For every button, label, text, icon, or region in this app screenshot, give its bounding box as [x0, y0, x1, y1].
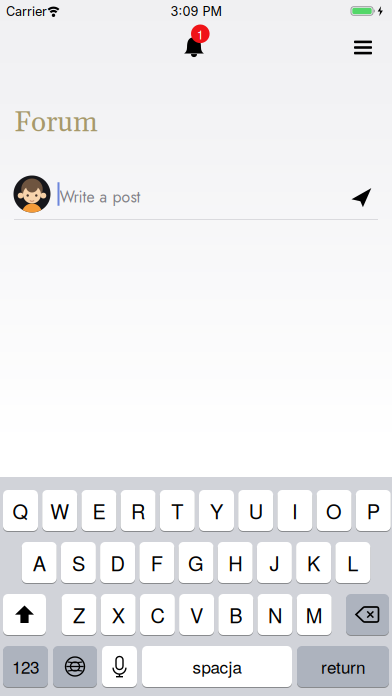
staticText: H: [228, 548, 242, 577]
staticText: G: [188, 548, 204, 577]
button[interactable]: H: [0, 0, 392, 696]
staticText: O: [326, 496, 342, 525]
button[interactable]: Shift: [0, 0, 392, 696]
staticText: L: [347, 548, 358, 577]
staticText: Z: [73, 600, 85, 629]
button[interactable]: Next keyboard: [0, 0, 392, 696]
staticText: W: [50, 496, 69, 525]
button[interactable]: E: [0, 0, 392, 696]
button[interactable]: Numbers: [0, 0, 392, 696]
button[interactable]: Z: [0, 0, 392, 696]
button[interactable]: Y: [0, 0, 392, 696]
button[interactable]: Menu: [354, 40, 372, 54]
button[interactable]: Notifications: [174, 24, 214, 64]
staticText: Y: [210, 496, 223, 525]
staticText: S: [72, 548, 85, 577]
button[interactable]: return: [0, 0, 392, 696]
staticText: Carrier: [6, 4, 47, 19]
button[interactable]: C: [0, 0, 392, 696]
staticText: Q: [12, 496, 28, 525]
staticText: X: [112, 600, 125, 629]
staticText: C: [150, 600, 164, 629]
button[interactable]: V: [0, 0, 392, 696]
staticText: spacja: [192, 654, 241, 679]
button[interactable]: T: [0, 0, 392, 696]
staticText: P: [367, 496, 380, 525]
button[interactable]: Send post: [351, 188, 371, 207]
staticText: V: [190, 600, 203, 629]
button[interactable]: L: [0, 0, 392, 696]
staticText: 123: [12, 654, 39, 679]
button[interactable]: Write a post: [13, 174, 343, 214]
button[interactable]: W: [0, 0, 392, 696]
staticText: return: [321, 654, 365, 679]
staticText: B: [229, 600, 242, 629]
button[interactable]: K: [0, 0, 392, 696]
button[interactable]: P: [0, 0, 392, 696]
staticText: U: [249, 496, 263, 525]
staticText: K: [307, 548, 320, 577]
staticText: 3:09 PM: [170, 4, 221, 19]
button[interactable]: N: [0, 0, 392, 696]
button[interactable]: Dictate: [0, 0, 392, 696]
staticText: F: [151, 548, 163, 577]
button[interactable]: F: [0, 0, 392, 696]
staticText: Write a post: [59, 186, 140, 208]
staticText: Forum: [14, 105, 98, 141]
staticText: 1: [197, 25, 204, 43]
button[interactable]: I: [0, 0, 392, 696]
button[interactable]: Q: [0, 0, 392, 696]
button[interactable]: spacja: [0, 0, 392, 696]
button[interactable]: M: [0, 0, 392, 696]
button[interactable]: U: [0, 0, 392, 696]
button[interactable]: Delete: [0, 0, 392, 696]
staticText: N: [268, 600, 282, 629]
staticText: T: [171, 496, 183, 525]
button[interactable]: X: [0, 0, 392, 696]
staticText: J: [269, 548, 279, 577]
staticText: M: [306, 600, 323, 629]
button[interactable]: A: [0, 0, 392, 696]
button[interactable]: J: [0, 0, 392, 696]
button[interactable]: G: [0, 0, 392, 696]
button[interactable]: S: [0, 0, 392, 696]
button[interactable]: R: [0, 0, 392, 696]
button[interactable]: B: [0, 0, 392, 696]
button[interactable]: D: [0, 0, 392, 696]
staticText: D: [111, 548, 125, 577]
staticText: E: [92, 496, 105, 525]
staticText: A: [33, 548, 46, 577]
staticText: I: [292, 496, 298, 525]
staticText: R: [131, 496, 145, 525]
button[interactable]: O: [0, 0, 392, 696]
